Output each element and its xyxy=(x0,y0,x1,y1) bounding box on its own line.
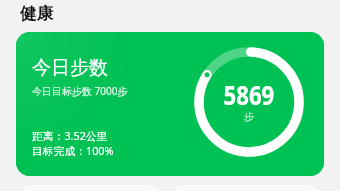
staticText: 5869 xyxy=(224,76,274,113)
staticText: 今日目标步数 7000步 xyxy=(32,84,128,98)
staticText: 今日步数 xyxy=(32,56,108,80)
staticText: 距离：3.52公里 xyxy=(32,128,108,143)
button[interactable]: 今日步数 xyxy=(16,32,324,176)
staticText: 目标完成：100% xyxy=(32,143,114,158)
staticText: 步 xyxy=(244,110,254,123)
staticText: 健康 xyxy=(20,3,53,24)
